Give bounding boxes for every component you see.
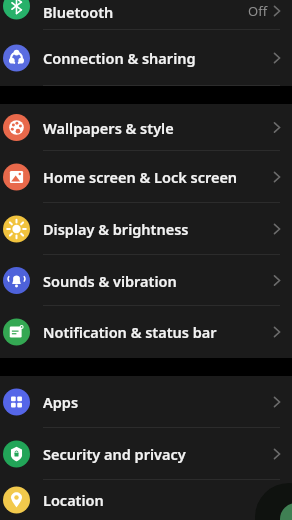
button[interactable]: Bluetooth: [0, 0, 292, 30]
button[interactable]: Sounds & vibration: [0, 255, 292, 306]
staticText: Connection & sharing: [43, 48, 196, 68]
button[interactable]: Security and privacy: [0, 428, 292, 480]
staticText: Notification & status bar: [43, 322, 217, 342]
button[interactable]: Apps: [0, 376, 292, 428]
staticText: Home screen & Lock screen: [43, 167, 238, 187]
button[interactable]: Wallpapers & style: [0, 104, 292, 151]
staticText: Bluetooth: [43, 2, 114, 22]
staticText: Off: [248, 2, 268, 20]
staticText: Location: [43, 490, 104, 510]
staticText: Security and privacy: [43, 444, 186, 464]
button[interactable]: Home screen & Lock screen: [0, 151, 292, 203]
staticText: Apps: [43, 392, 79, 412]
staticText: Wallpapers & style: [43, 118, 174, 138]
button[interactable]: Display & brightness: [0, 203, 292, 255]
staticText: Sounds & vibration: [43, 271, 177, 291]
button[interactable]: Notification & status bar: [0, 306, 292, 358]
button[interactable]: Connection & sharing: [0, 30, 292, 86]
staticText: Display & brightness: [43, 219, 189, 239]
button[interactable]: Location: [0, 480, 292, 520]
